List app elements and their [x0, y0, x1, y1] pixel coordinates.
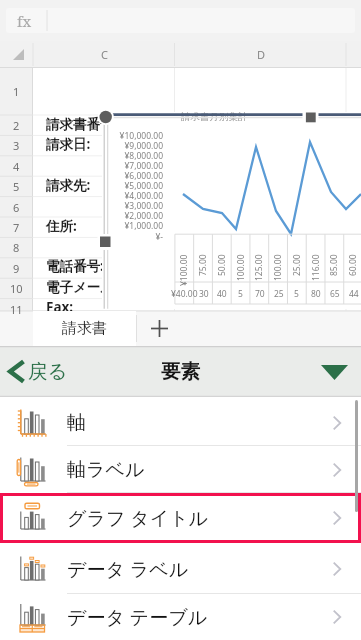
staticText: 9 — [13, 261, 20, 276]
staticText: ¥- — [155, 231, 163, 242]
staticText: ¥4,000.00 — [124, 190, 163, 201]
staticText: 100.00 — [272, 254, 284, 281]
staticText: ¥10,000.00 — [119, 130, 163, 141]
staticText: 請求書番号: — [46, 115, 118, 133]
staticText: 5 — [294, 288, 299, 300]
staticText: ¥6,000.00 — [124, 170, 163, 181]
staticText: 請求書月別集計 — [181, 111, 248, 123]
staticText: 65 — [330, 288, 340, 300]
staticText: 電子メール: — [46, 278, 118, 296]
button[interactable]: 戻る — [6, 359, 68, 384]
button[interactable]: 軸ラベル — [0, 446, 361, 493]
staticText: 3 — [13, 138, 20, 153]
staticText: 6 — [13, 200, 20, 215]
staticText: 75.00 — [197, 254, 209, 276]
staticText: 85.00 — [328, 254, 340, 276]
staticText: 11 — [10, 302, 23, 317]
button[interactable]: 閉じる — [315, 353, 353, 391]
staticText: 電話番号: — [46, 257, 104, 275]
staticText: 100.00 — [235, 254, 247, 281]
staticText: 60.00 — [347, 254, 359, 276]
staticText: 5 — [238, 288, 243, 300]
staticText: 戻る — [28, 359, 68, 384]
staticText: 116.00 — [310, 254, 322, 281]
staticText: 請求先: — [46, 176, 91, 194]
staticText: 25 — [274, 288, 284, 300]
staticText: 請求書 — [62, 319, 107, 338]
staticText: Fax: — [46, 298, 74, 316]
staticText: ¥7,000.00 — [124, 160, 163, 171]
button[interactable]: データ テーブル — [0, 594, 361, 640]
staticText: 7 — [13, 220, 20, 235]
staticText: ¥100.00 — [178, 254, 190, 286]
staticText: 44 — [349, 288, 359, 300]
staticText: 8 — [13, 240, 20, 255]
staticText: ¥3,000.00 — [124, 200, 163, 211]
staticText: 4 — [13, 159, 20, 174]
staticText: C — [101, 47, 108, 62]
staticText: ¥1,000.00 — [124, 220, 163, 231]
staticText: データ ラベル — [67, 556, 189, 582]
staticText: D — [257, 47, 266, 62]
staticText: fx — [17, 11, 32, 31]
staticText: 125.00 — [253, 254, 265, 281]
staticText: ¥9,000.00 — [124, 140, 163, 151]
staticText: 請求日: — [46, 135, 91, 153]
staticText: 住所: — [46, 217, 77, 235]
staticText: ¥8,000.00 — [124, 150, 163, 161]
staticText: 70 — [255, 288, 265, 300]
button[interactable]: 軸 — [0, 399, 361, 446]
staticText: 1 — [13, 84, 20, 99]
staticText: 25.00 — [291, 254, 303, 276]
button[interactable]: 請求書 — [33, 311, 136, 346]
button[interactable]: データ ラベル — [0, 543, 361, 594]
staticText: 40 — [217, 288, 227, 300]
button[interactable]: 新しいシート — [137, 311, 182, 346]
staticText: ¥5,000.00 — [124, 180, 163, 191]
staticText: 5 — [13, 179, 20, 194]
staticText: 50.00 — [216, 254, 228, 276]
button[interactable]: グラフ タイトル — [0, 493, 361, 543]
staticText: 要素 — [161, 359, 200, 384]
staticText: ¥2,000.00 — [124, 210, 163, 221]
staticText: 軸ラベル — [67, 458, 145, 482]
staticText: 80 — [311, 288, 321, 300]
staticText: 2 — [13, 118, 20, 133]
staticText: ¥40.00 — [171, 288, 198, 300]
staticText: データ テーブル — [67, 604, 208, 630]
staticText: グラフ タイトル — [67, 505, 209, 531]
staticText: 30 — [199, 288, 209, 300]
staticText: 軸 — [67, 411, 86, 435]
staticText: 10 — [10, 281, 23, 296]
